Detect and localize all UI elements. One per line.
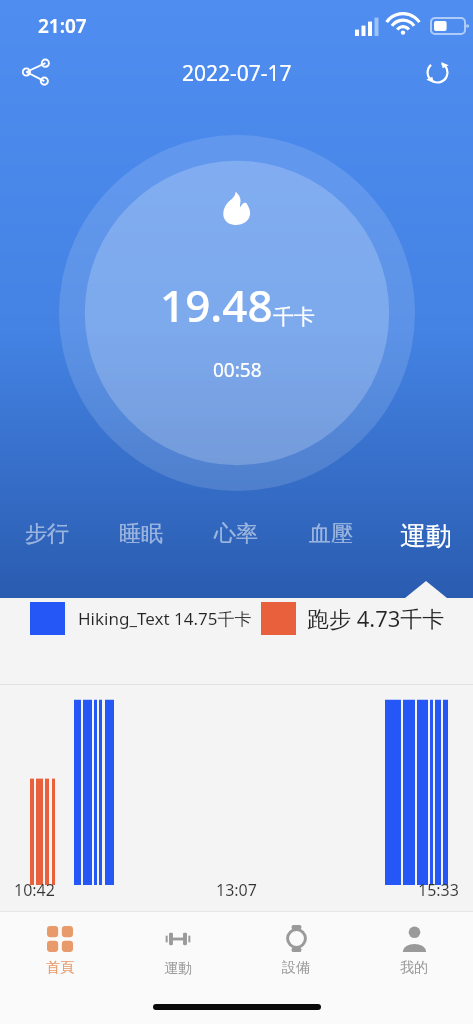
staticText: 運動 bbox=[164, 960, 192, 978]
staticText: 睡眠 bbox=[119, 520, 163, 548]
button[interactable]: 首頁 bbox=[0, 912, 119, 990]
button[interactable]: 血壓 bbox=[283, 510, 378, 598]
staticText: 13:07 bbox=[216, 879, 257, 901]
button[interactable]: 運動 bbox=[378, 510, 473, 598]
staticText: 21:07 bbox=[38, 13, 87, 39]
button[interactable]: 睡眠 bbox=[94, 510, 188, 598]
staticText: 19.48 bbox=[160, 275, 273, 335]
staticText: Hiking_Text 14.75千卡 bbox=[78, 607, 252, 630]
button[interactable]: Share bbox=[12, 48, 60, 96]
staticText: 我的 bbox=[400, 959, 428, 977]
button[interactable]: 運動 bbox=[119, 912, 237, 990]
button[interactable]: 設備 bbox=[237, 912, 355, 990]
staticText: 血壓 bbox=[309, 520, 353, 548]
staticText: 2022-07-17 bbox=[182, 59, 292, 88]
staticText: 首頁 bbox=[46, 959, 74, 977]
staticText: 步行 bbox=[25, 520, 69, 548]
button[interactable]: 步行 bbox=[0, 510, 94, 598]
staticText: 00:58 bbox=[213, 357, 262, 383]
button[interactable]: 我的 bbox=[355, 912, 473, 990]
staticText: 跑步 4.73千卡 bbox=[307, 603, 445, 633]
staticText: 千卡 bbox=[273, 304, 315, 330]
staticText: 心率 bbox=[214, 520, 258, 548]
staticText: 10:42 bbox=[14, 879, 55, 901]
staticText: 設備 bbox=[282, 959, 310, 977]
button[interactable]: Refresh bbox=[413, 48, 461, 96]
staticText: 運動 bbox=[400, 520, 452, 553]
staticText: 15:33 bbox=[418, 879, 459, 901]
button[interactable]: 心率 bbox=[188, 510, 283, 598]
